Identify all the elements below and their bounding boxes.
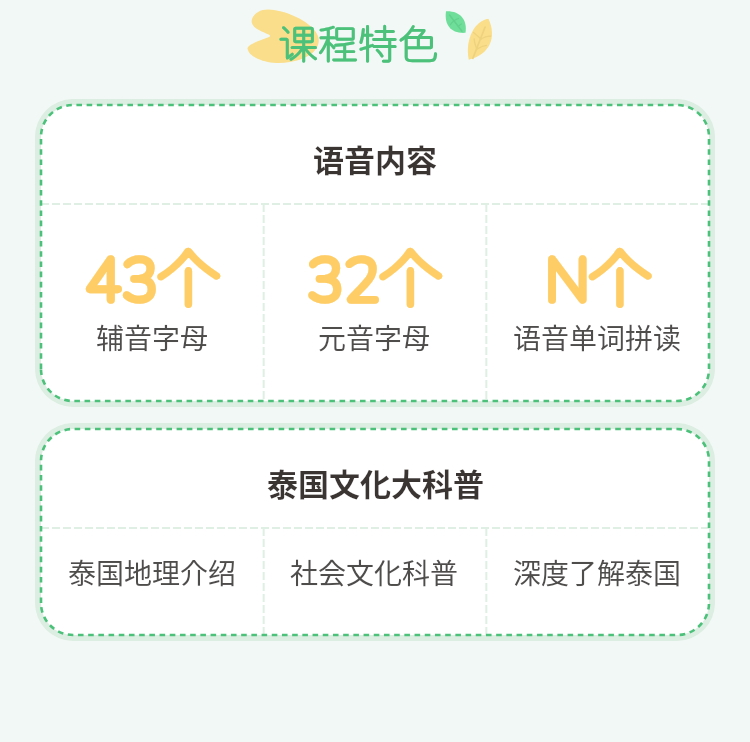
button[interactable]: 32个 — [263, 198, 486, 401]
staticText: 课程特色 — [278, 20, 438, 67]
staticText: 泰国地理介绍 — [68, 552, 237, 593]
button[interactable]: 深度了解泰国 — [486, 522, 709, 635]
staticText: 元音字母 — [318, 317, 431, 358]
staticText: 语音单词拼读 — [513, 317, 682, 358]
button[interactable]: 43个 — [41, 198, 263, 401]
button[interactable]: 泰国地理介绍 — [41, 522, 263, 635]
staticText: 泰国文化大科普 — [267, 460, 484, 505]
staticText: 43个 — [85, 242, 220, 314]
staticText: 32个 — [307, 242, 442, 314]
staticText: N个 — [545, 242, 651, 314]
button[interactable]: N个 — [486, 198, 709, 401]
staticText: N个 — [545, 242, 651, 314]
button[interactable]: 社会文化科普 — [263, 522, 486, 635]
staticText: 深度了解泰国 — [513, 552, 682, 593]
staticText: 课程特色 — [278, 20, 438, 67]
staticText: 社会文化科普 — [290, 552, 459, 593]
staticText: 辅音字母 — [96, 317, 209, 358]
staticText: 语音内容 — [313, 136, 437, 181]
staticText: 32个 — [307, 242, 442, 314]
staticText: 43个 — [85, 242, 220, 314]
